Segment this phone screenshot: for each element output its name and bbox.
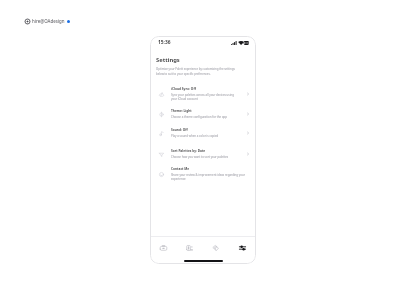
staticText: Settings <box>156 56 180 64</box>
staticText: hire@OAdesign <box>32 18 65 24</box>
staticText: iCloud Sync: Off <box>171 87 196 91</box>
button[interactable]: Theme: Light <box>150 108 256 120</box>
staticText: 15:36 <box>158 39 171 46</box>
staticText: Sort Palettes by: Date <box>171 149 206 153</box>
button[interactable]: Sound: Off <box>150 127 256 139</box>
staticText: Sound: Off <box>171 128 188 132</box>
button[interactable]: Camera <box>150 237 176 260</box>
staticText: Optimize your Palett experience by custo… <box>156 67 236 76</box>
staticText: Choose a theme configuration for the app <box>171 115 228 119</box>
staticText: Share your review & improvement ideas re… <box>171 173 246 181</box>
staticText: Choose how you want to sort your palette… <box>171 155 229 159</box>
staticText: Theme: Light <box>171 109 192 113</box>
button[interactable]: Contact Me <box>150 166 256 182</box>
staticText: Sync your palettes across all your devic… <box>171 93 236 101</box>
staticText: Play a sound when a color is copied <box>171 134 219 138</box>
staticText: Contact Me <box>171 167 190 171</box>
button[interactable]: Sort Palettes by: Date <box>150 148 256 160</box>
button[interactable]: Library <box>176 237 202 260</box>
button[interactable]: iCloud Sync: Off <box>150 86 256 102</box>
button[interactable]: Settings <box>229 237 256 260</box>
button[interactable]: Palettes <box>202 237 229 260</box>
